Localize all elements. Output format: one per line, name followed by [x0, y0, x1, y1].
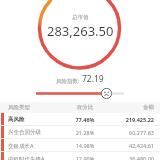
staticText: 77.46%: [60, 116, 110, 123]
staticText: 交银成长A: [8, 142, 60, 150]
staticText: 金额: [110, 104, 154, 111]
staticText: 14.98%: [60, 142, 110, 149]
staticText: 283,263.50: [47, 22, 114, 40]
button[interactable]: 中欧时代先锋A: [0, 152, 160, 160]
button[interactable]: 交银成长A: [0, 139, 160, 152]
staticText: 兴全合润分级: [8, 129, 60, 136]
button[interactable]: 兴全合润分级: [0, 126, 160, 139]
staticText: 百分比: [60, 104, 110, 111]
staticText: 36,480.00: [110, 155, 154, 160]
staticText: 42,424.61: [110, 142, 154, 149]
staticText: 风险类型: [8, 104, 60, 111]
staticText: 60,277.83: [110, 129, 154, 136]
staticText: 总市值: [72, 14, 89, 21]
staticText: 风险指数:: [56, 77, 80, 85]
staticText: 12.90%: [60, 155, 110, 160]
button[interactable]: 高风险: [0, 113, 160, 126]
staticText: 219,425.22: [110, 116, 154, 123]
staticText: 21.28%: [60, 129, 110, 136]
staticText: 72.19: [82, 73, 104, 85]
staticText: 高风险: [8, 116, 60, 123]
staticText: 中欧时代先锋A: [8, 155, 60, 160]
